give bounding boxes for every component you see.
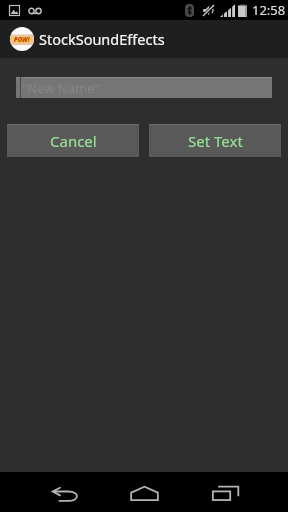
button[interactable]: Back bbox=[35, 476, 95, 512]
staticText: 12:58 bbox=[252, 1, 286, 19]
button[interactable]: "New Name" bbox=[16, 77, 272, 98]
button[interactable]: Home bbox=[114, 475, 174, 511]
button[interactable]: Set Text bbox=[149, 124, 281, 157]
staticText: Cancel bbox=[50, 131, 97, 151]
button[interactable]: Recent apps bbox=[196, 475, 256, 511]
staticText: "New Name" bbox=[22, 79, 100, 97]
staticText: StockSoundEffects bbox=[39, 29, 165, 49]
staticText: Set Text bbox=[188, 131, 243, 151]
button[interactable]: Cancel bbox=[7, 124, 139, 157]
staticText: POW! bbox=[14, 36, 30, 44]
